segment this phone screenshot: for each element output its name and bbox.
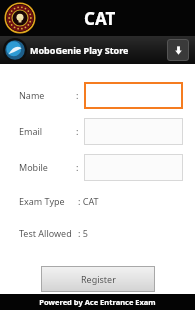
- staticText: : 5: [78, 227, 88, 239]
- staticText: : CAT: [78, 195, 99, 207]
- button[interactable]: [84, 118, 183, 145]
- staticText: Register: [81, 273, 116, 285]
- staticText: :: [76, 161, 79, 173]
- staticText: CAT: [84, 7, 116, 30]
- staticText: Mobile: [19, 161, 48, 173]
- staticText: Powered by Ace Entrance Exam: [39, 297, 156, 307]
- button[interactable]: [84, 82, 183, 109]
- button[interactable]: Download: [167, 39, 189, 61]
- button[interactable]: MoboGenie Play Store: [0, 36, 195, 64]
- staticText: Name: [19, 89, 45, 101]
- staticText: Test Allowed: [19, 227, 72, 239]
- button[interactable]: Register: [41, 266, 155, 292]
- staticText: :: [76, 125, 79, 137]
- staticText: :: [76, 89, 79, 101]
- staticText: MoboGenie Play Store: [30, 44, 129, 56]
- button[interactable]: [84, 154, 183, 181]
- staticText: Email: [19, 125, 43, 137]
- staticText: Exam Type: [19, 195, 65, 207]
